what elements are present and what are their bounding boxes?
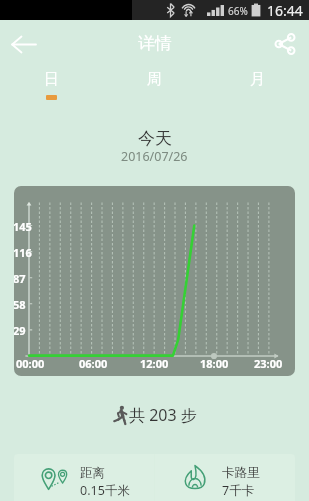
staticText: 距离 xyxy=(80,465,105,481)
button[interactable]: Back xyxy=(6,26,42,62)
staticText: 116 xyxy=(14,245,32,260)
staticText: 0.15千米 xyxy=(80,482,130,499)
staticText: 66% xyxy=(228,4,248,18)
staticText: 23:00 xyxy=(254,356,283,371)
button[interactable]: 月 xyxy=(206,62,309,95)
staticText: 2016/07/26 xyxy=(121,148,188,165)
staticText: 29 xyxy=(14,323,26,338)
staticText: 58 xyxy=(14,297,26,312)
button[interactable]: 卡路里 xyxy=(155,454,295,501)
staticText: 周 xyxy=(147,70,162,89)
button[interactable]: Share xyxy=(267,26,303,62)
button[interactable]: 距离 xyxy=(14,454,154,501)
button[interactable]: 周 xyxy=(103,62,206,95)
staticText: 145 xyxy=(14,219,32,234)
staticText: 今天 xyxy=(138,128,172,149)
staticText: 详情 xyxy=(138,33,172,54)
staticText: 87 xyxy=(14,271,26,286)
staticText: 00:00 xyxy=(16,356,45,371)
staticText: 16:44 xyxy=(267,1,303,20)
staticText: 12:00 xyxy=(140,356,169,371)
staticText: 7千卡 xyxy=(222,482,255,499)
staticText: 共 203 步 xyxy=(129,404,197,426)
staticText: 月 xyxy=(250,70,265,89)
staticText: 卡路里 xyxy=(222,465,260,481)
staticText: 18:00 xyxy=(200,356,229,371)
staticText: 06:00 xyxy=(79,356,108,371)
button[interactable]: 日 xyxy=(0,62,103,100)
staticText: 日 xyxy=(44,70,59,89)
